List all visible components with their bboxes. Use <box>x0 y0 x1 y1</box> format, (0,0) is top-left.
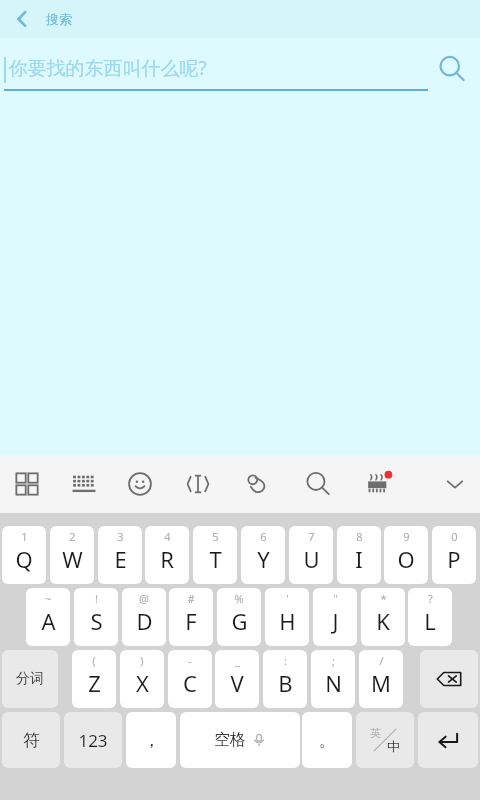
button[interactable]: I <box>337 526 381 584</box>
button[interactable]: Search <box>430 47 474 91</box>
staticText: U <box>303 544 320 574</box>
staticText: / <box>379 653 384 668</box>
staticText: V <box>230 668 244 698</box>
button[interactable]: Comma <box>126 712 176 768</box>
staticText: @ <box>139 591 149 606</box>
button[interactable]: G <box>217 588 261 646</box>
staticText: S <box>90 606 103 636</box>
button[interactable]: Language toggle <box>356 712 414 768</box>
staticText: ? <box>428 591 433 606</box>
staticText: # <box>187 591 195 606</box>
button[interactable]: Q <box>2 526 46 584</box>
staticText: ， <box>143 730 160 751</box>
staticText: 6 <box>260 529 267 544</box>
staticText: P <box>447 544 461 574</box>
staticText: X <box>136 668 149 698</box>
button[interactable]: O <box>384 526 428 584</box>
staticText: N <box>325 668 342 698</box>
button[interactable]: Y <box>241 526 285 584</box>
staticText: I <box>355 544 363 574</box>
staticText: L <box>424 606 436 636</box>
staticText: ' <box>286 591 289 606</box>
staticText: O <box>397 544 415 574</box>
staticText: 空格 <box>214 730 246 750</box>
button[interactable]: Emoji <box>118 462 162 506</box>
staticText: 英 <box>370 726 381 740</box>
staticText: 搜索 <box>46 11 72 27</box>
staticText: 分词 <box>16 670 44 688</box>
staticText: _ <box>235 653 240 668</box>
staticText: H <box>279 606 296 636</box>
staticText: ; <box>332 653 335 668</box>
staticText: B <box>278 668 293 698</box>
staticText: * <box>380 591 387 606</box>
staticText: J <box>332 606 339 636</box>
staticText: 4 <box>164 529 171 544</box>
staticText: 你要找的东西叫什么呢? <box>8 55 207 81</box>
button[interactable]: Z <box>72 650 116 708</box>
button[interactable]: Hide keyboard <box>433 462 477 506</box>
staticText: - <box>188 653 192 668</box>
staticText: Q <box>15 544 33 574</box>
button[interactable]: Search <box>296 462 340 506</box>
button[interactable]: A <box>26 588 70 646</box>
button[interactable]: H <box>265 588 309 646</box>
button[interactable]: Attachment <box>236 462 280 506</box>
button[interactable]: C <box>168 650 212 708</box>
staticText: C <box>183 668 197 698</box>
staticText: Z <box>88 668 101 698</box>
button[interactable]: 符 <box>2 712 60 768</box>
button[interactable]: Keyboard layout <box>62 462 106 506</box>
staticText: Y <box>257 544 270 574</box>
staticText: F <box>185 606 197 636</box>
staticText: 中 <box>387 738 400 754</box>
button[interactable]: L <box>408 588 452 646</box>
button[interactable]: R <box>145 526 189 584</box>
button[interactable]: E <box>98 526 142 584</box>
button[interactable]: K <box>361 588 405 646</box>
button[interactable]: M <box>359 650 403 708</box>
staticText: E <box>114 544 127 574</box>
staticText: 0 <box>451 529 458 544</box>
button[interactable]: Space <box>180 712 300 768</box>
button[interactable]: D <box>122 588 166 646</box>
button[interactable]: J <box>313 588 357 646</box>
button[interactable]: B <box>263 650 307 708</box>
button[interactable]: X <box>120 650 164 708</box>
button[interactable]: Back <box>0 0 44 38</box>
staticText: 符 <box>23 730 40 751</box>
button[interactable]: S <box>74 588 118 646</box>
staticText: K <box>376 606 390 636</box>
button[interactable]: Stickers <box>356 462 400 506</box>
staticText: 5 <box>212 529 219 544</box>
staticText: 。 <box>319 730 336 751</box>
staticText: T <box>209 544 222 574</box>
button[interactable]: F <box>169 588 213 646</box>
staticText: : <box>284 653 287 668</box>
staticText: 3 <box>117 529 124 544</box>
button[interactable]: V <box>215 650 259 708</box>
staticText: 2 <box>69 529 76 544</box>
button[interactable]: T <box>193 526 237 584</box>
button[interactable]: Enter <box>418 712 478 768</box>
staticText: 9 <box>403 529 410 544</box>
button[interactable]: Backspace <box>420 650 478 708</box>
button[interactable]: Apps <box>5 462 49 506</box>
staticText: ) <box>140 653 144 668</box>
button[interactable]: W <box>50 526 94 584</box>
staticText: G <box>231 606 248 636</box>
button[interactable]: 分词 <box>2 650 58 708</box>
staticText: W <box>62 544 83 574</box>
button[interactable]: 123 <box>64 712 122 768</box>
button[interactable]: P <box>432 526 476 584</box>
button[interactable]: 你要找的东西叫什么呢? <box>4 47 428 91</box>
staticText: M <box>371 668 391 698</box>
staticText: D <box>136 606 153 636</box>
staticText: R <box>160 544 174 574</box>
button[interactable]: U <box>289 526 333 584</box>
staticText: 123 <box>78 729 108 752</box>
button[interactable]: N <box>311 650 355 708</box>
staticText: 1 <box>21 529 28 544</box>
button[interactable]: Text editing <box>176 462 220 506</box>
button[interactable]: Period <box>302 712 352 768</box>
